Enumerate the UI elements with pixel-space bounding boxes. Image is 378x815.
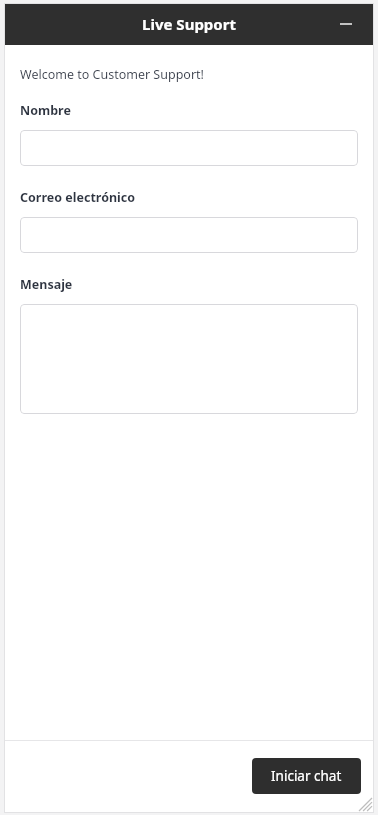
button[interactable]: Minimize: [332, 10, 360, 38]
staticText: Live Support: [142, 14, 236, 34]
staticText: Correo electrónico: [20, 189, 136, 206]
button[interactable]: Nombre input: [20, 130, 358, 166]
button[interactable]: Iniciar chat: [252, 758, 361, 794]
staticText: Mensaje: [20, 276, 73, 293]
staticText: Welcome to Customer Support!: [20, 66, 204, 83]
staticText: Iniciar chat: [271, 767, 342, 785]
button[interactable]: Mensaje input: [20, 304, 358, 414]
staticText: Nombre: [20, 102, 71, 119]
button[interactable]: Correo electrónico input: [20, 217, 358, 253]
